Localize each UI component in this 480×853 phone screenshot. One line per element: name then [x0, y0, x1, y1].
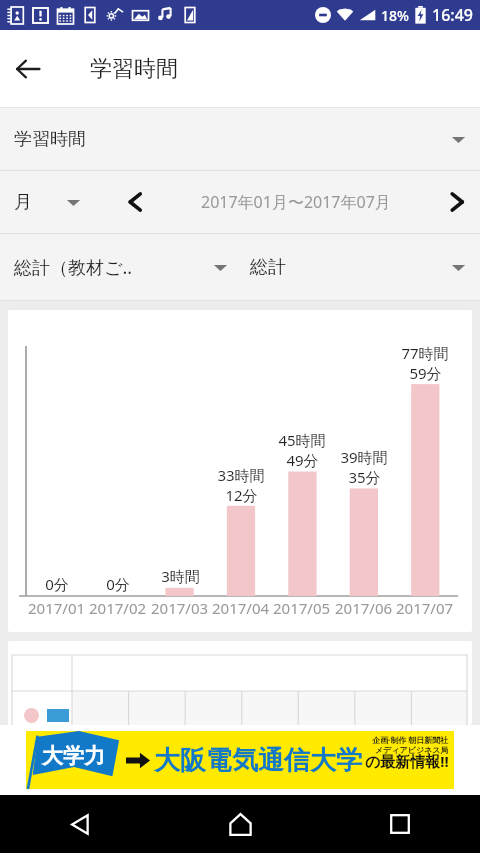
button[interactable]: 学習時間 [0, 108, 480, 170]
staticText: 2017/06 [335, 598, 393, 618]
button[interactable]: Back [0, 41, 56, 97]
button[interactable]: 総計 [240, 234, 480, 300]
button[interactable] [8, 641, 472, 725]
staticText: 18% [381, 6, 409, 25]
staticText: 35分 [348, 467, 381, 487]
button[interactable]: Advertisement: 大阪電気通信大学 [26, 731, 454, 789]
button[interactable]: 月 [0, 171, 112, 233]
staticText: 16:49 [432, 4, 473, 26]
button[interactable]: Next period [434, 179, 480, 225]
button[interactable]: Home [160, 795, 320, 853]
staticText: 2017/07 [396, 598, 454, 618]
button[interactable]: 総計（教材ご.. [0, 234, 240, 300]
staticText: メディアビジネス局 [375, 745, 449, 755]
staticText: 49分 [286, 450, 319, 470]
staticText: 33時間 [217, 465, 265, 485]
staticText: 2017/04 [212, 598, 270, 618]
staticText: 77時間 [401, 343, 449, 363]
staticText: 総計（教材ご.. [14, 255, 133, 280]
staticText: 企画·制作 朝日新聞社 [372, 734, 449, 745]
staticText: 59分 [409, 363, 442, 383]
staticText: 総計 [250, 256, 286, 279]
button[interactable]: Recent apps [320, 795, 480, 853]
staticText: 月 [14, 191, 32, 214]
button[interactable]: Previous period [112, 179, 158, 225]
staticText: 2017/01 [28, 598, 86, 618]
button[interactable]: Back [0, 795, 160, 853]
staticText: 大学力 [42, 743, 105, 769]
staticText: 学習時間 [14, 128, 86, 151]
staticText: 12分 [225, 485, 258, 505]
staticText: 学習時間 [90, 55, 178, 83]
staticText: 2017年01月〜2017年07月 [201, 191, 391, 213]
staticText: 0分 [45, 574, 69, 594]
staticText: 0分 [106, 574, 130, 594]
staticText: の最新情報!! [365, 751, 449, 771]
staticText: 大阪電気通信大学 [154, 744, 362, 777]
staticText: 2017/05 [273, 598, 331, 618]
staticText: 3時間 [161, 566, 200, 586]
staticText: 2017/03 [151, 598, 209, 618]
staticText: 45時間 [278, 430, 326, 450]
staticText: 2017/02 [89, 598, 147, 618]
staticText: 39時間 [340, 447, 388, 467]
